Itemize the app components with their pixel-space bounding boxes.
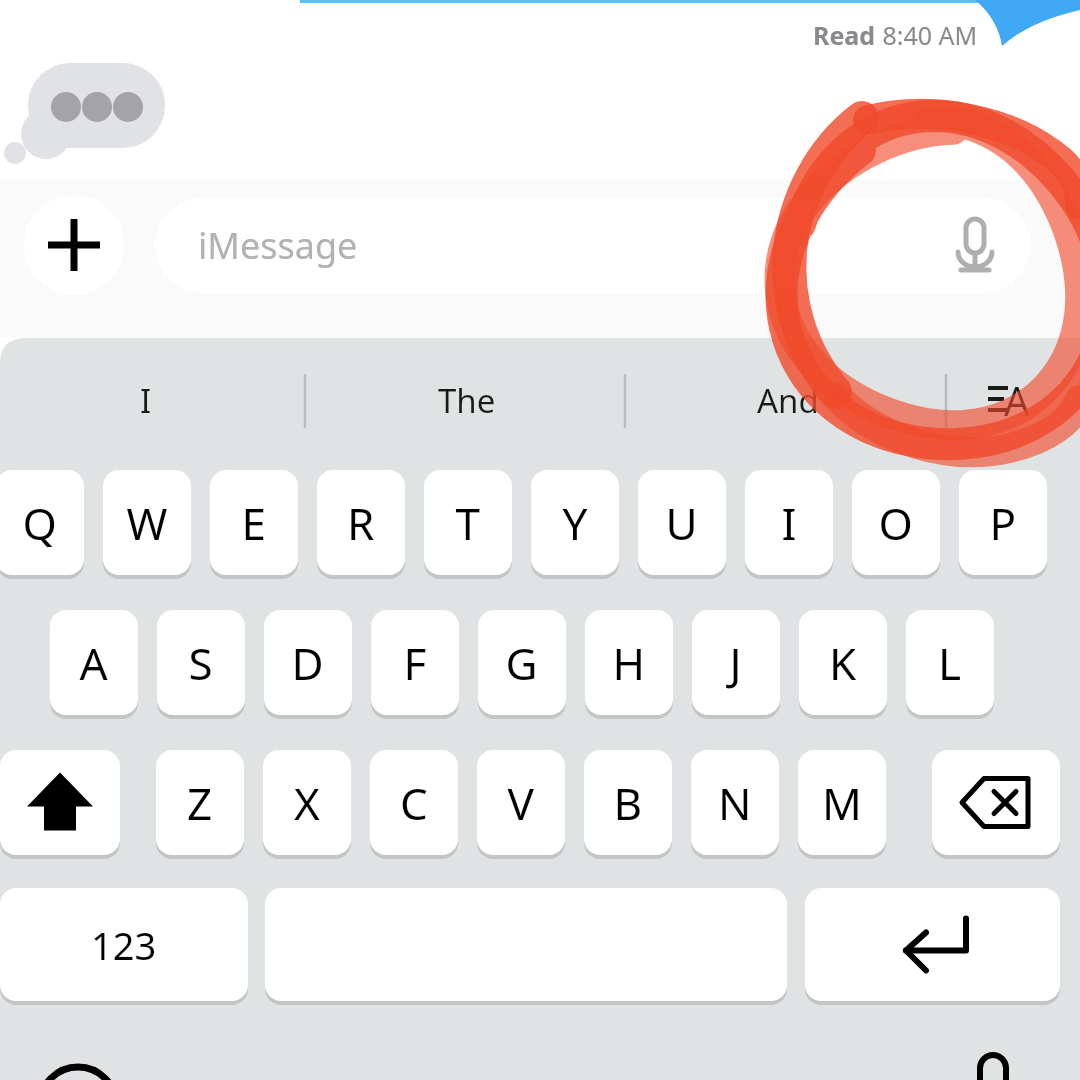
button[interactable]: E bbox=[210, 470, 298, 575]
button[interactable]: And bbox=[680, 370, 895, 430]
button[interactable]: G bbox=[478, 610, 566, 715]
button[interactable]: X bbox=[263, 750, 351, 855]
button[interactable]: Numbers bbox=[0, 888, 248, 1001]
button[interactable]: The bbox=[360, 370, 575, 430]
button[interactable]: M bbox=[798, 750, 886, 855]
button[interactable]: I bbox=[745, 470, 833, 575]
button[interactable]: Text formatting bbox=[960, 368, 1070, 432]
button[interactable]: J bbox=[692, 610, 780, 715]
button[interactable]: Return bbox=[805, 888, 1060, 1001]
button[interactable]: V bbox=[477, 750, 565, 855]
button[interactable]: R bbox=[317, 470, 405, 575]
button[interactable]: P bbox=[959, 470, 1047, 575]
button[interactable]: W bbox=[103, 470, 191, 575]
button[interactable]: Q bbox=[0, 470, 84, 575]
button[interactable]: A bbox=[50, 610, 138, 715]
button[interactable]: F bbox=[371, 610, 459, 715]
button[interactable]: L bbox=[906, 610, 994, 715]
button[interactable]: Y bbox=[531, 470, 619, 575]
button[interactable]: C bbox=[370, 750, 458, 855]
button[interactable]: I bbox=[40, 370, 270, 430]
button[interactable]: B bbox=[584, 750, 672, 855]
button[interactable]: D bbox=[264, 610, 352, 715]
button[interactable]: Add attachment bbox=[24, 196, 124, 296]
button[interactable]: U bbox=[638, 470, 726, 575]
button[interactable]: Dictate bbox=[945, 205, 1025, 285]
button[interactable]: Backspace bbox=[932, 750, 1060, 855]
button[interactable]: S bbox=[157, 610, 245, 715]
button[interactable]: Message input field bbox=[155, 198, 1030, 293]
button[interactable]: Z bbox=[156, 750, 244, 855]
button[interactable]: K bbox=[799, 610, 887, 715]
button[interactable]: O bbox=[852, 470, 940, 575]
button[interactable]: Shift bbox=[0, 750, 120, 855]
button[interactable]: N bbox=[691, 750, 779, 855]
button[interactable]: H bbox=[585, 610, 673, 715]
button[interactable]: T bbox=[424, 470, 512, 575]
